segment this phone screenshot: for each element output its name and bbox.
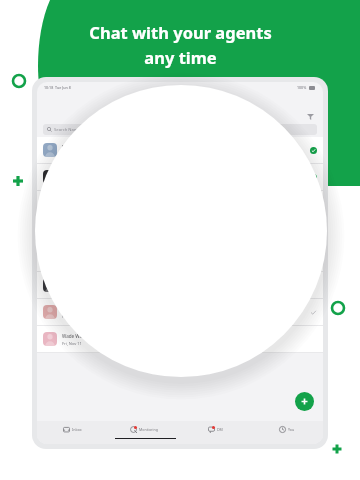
staticText: any time xyxy=(144,46,217,68)
staticText: 10:18 Tue Jun 8 xyxy=(44,85,71,90)
button[interactable]: Monitoring xyxy=(108,421,179,438)
staticText: Fri, Nov 11 xyxy=(62,341,82,346)
staticText: Fri, Nov 8 xyxy=(62,314,80,319)
button[interactable]: Search Name xyxy=(43,124,317,135)
button[interactable]: New message xyxy=(295,392,314,411)
staticText: Help Support xyxy=(62,144,92,150)
staticText: Chat with your agents xyxy=(89,21,272,43)
button[interactable]: Design Team xyxy=(37,272,323,299)
staticText: You xyxy=(288,427,295,432)
staticText: Search Name xyxy=(54,127,81,133)
staticText: Monitoring xyxy=(139,427,158,432)
button[interactable]: Inbox xyxy=(37,421,108,438)
staticText: DM xyxy=(217,427,223,432)
button[interactable]: Help Support xyxy=(37,137,323,164)
staticText: Inbox xyxy=(72,427,82,432)
button[interactable]: You xyxy=(251,421,323,438)
button[interactable]: Wade Warren xyxy=(37,326,323,353)
button[interactable]: Mobile Dev Team xyxy=(37,164,323,191)
button[interactable]: Jayvin xyxy=(37,299,323,326)
staticText: 100% xyxy=(297,85,307,90)
button[interactable]: DM xyxy=(179,421,251,438)
button[interactable]: Filter xyxy=(305,111,315,121)
staticText: Wade Warren xyxy=(62,333,92,339)
